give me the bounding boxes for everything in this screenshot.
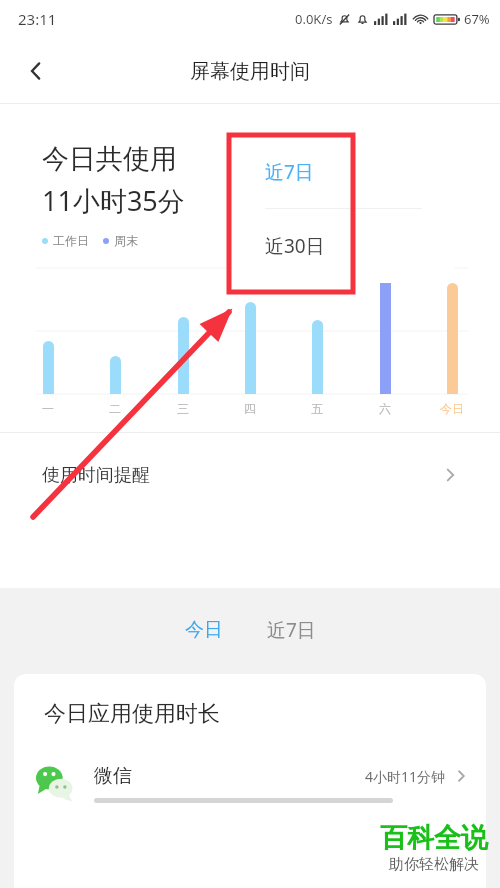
button[interactable]: 返回 (14, 49, 58, 93)
staticText: 今日应用使用时长 (44, 700, 220, 728)
staticText: 六 (379, 401, 391, 416)
staticText: 0.0K/s (295, 10, 333, 28)
staticText: 23:11 (18, 9, 57, 29)
staticText: 微信 (94, 764, 132, 788)
staticText: 今日共使用 (42, 142, 177, 176)
staticText: 屏幕使用时间 (190, 59, 310, 84)
button[interactable]: 近30日 (232, 209, 455, 283)
staticText: 今日 (185, 618, 223, 642)
staticText: 周末 (114, 233, 138, 248)
staticText: 4小时11分钟 (365, 767, 446, 786)
staticText: 近7日 (265, 159, 314, 185)
button[interactable]: 近7日 (232, 135, 455, 208)
staticText: 五 (311, 401, 323, 416)
staticText: 助你轻松解决 (389, 855, 479, 874)
staticText: 使用时间提醒 (42, 464, 150, 487)
staticText: 近7日 (267, 617, 316, 643)
staticText: 二 (109, 401, 121, 416)
staticText: 67% (464, 10, 490, 28)
button[interactable]: 微信 (14, 764, 486, 803)
staticText: 工作日 (53, 233, 89, 248)
staticText: 百科全说 (380, 821, 488, 855)
staticText: 三 (177, 401, 189, 416)
staticText: 四 (244, 401, 256, 416)
button[interactable]: 近7日 (253, 609, 330, 651)
staticText: 近30日 (265, 233, 325, 259)
button[interactable]: 今日 (171, 610, 237, 650)
staticText: 今日 (440, 401, 464, 416)
staticText: 11小时35分 (42, 182, 185, 219)
staticText: 一 (42, 401, 54, 416)
button[interactable]: 使用时间提醒 (0, 433, 500, 517)
